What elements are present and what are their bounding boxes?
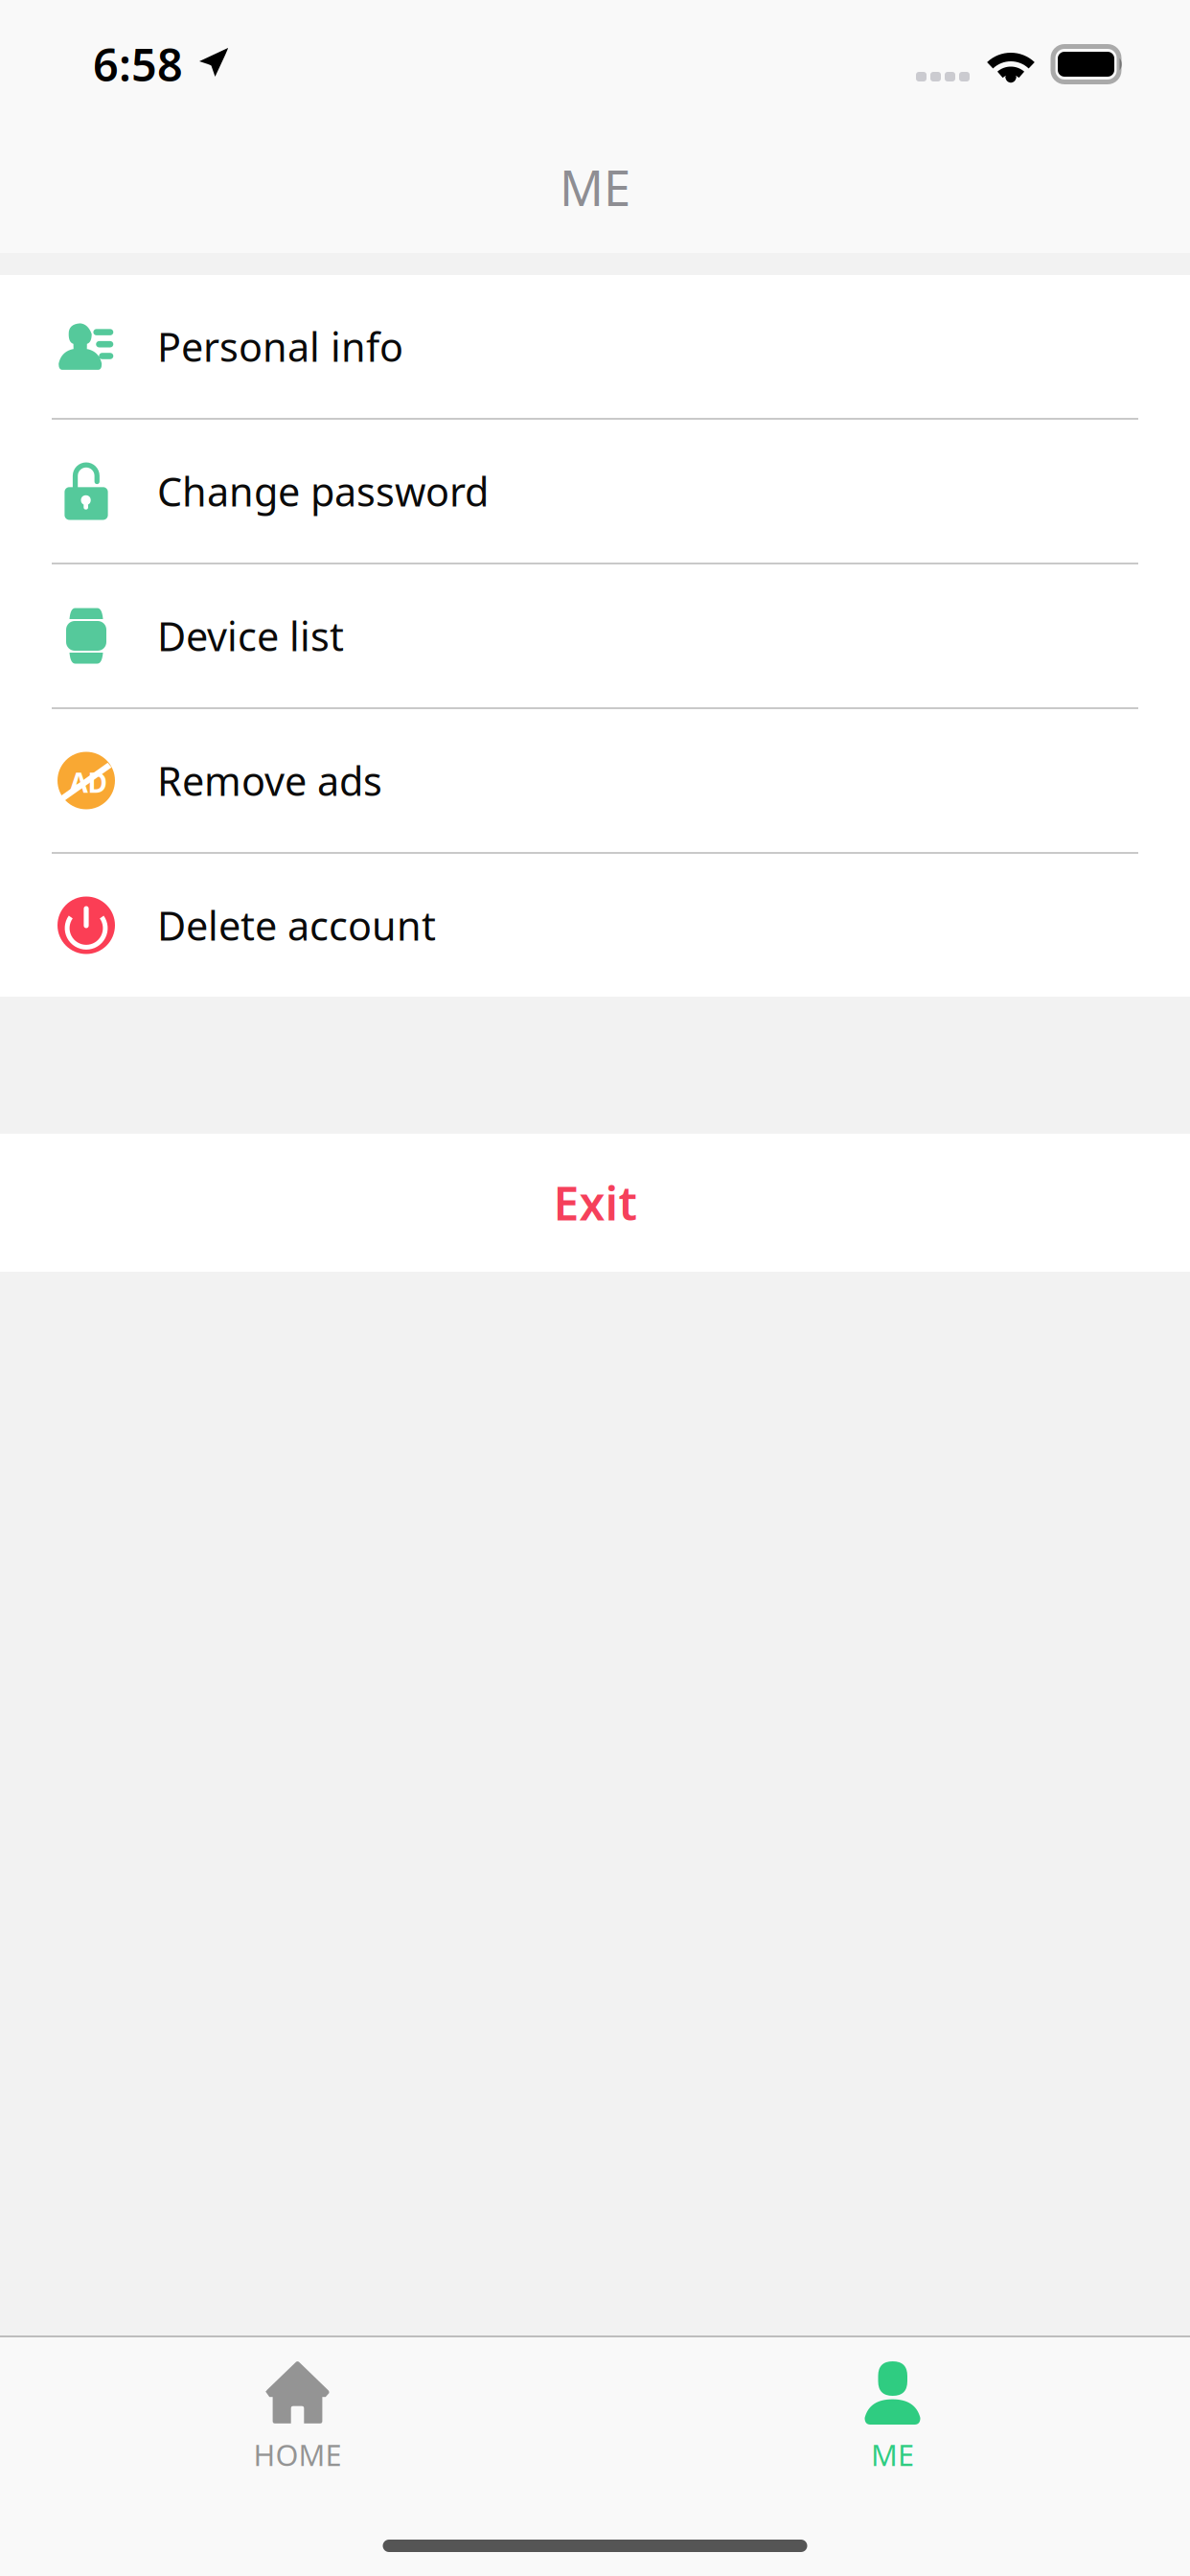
staticText: Change password (157, 465, 489, 517)
button[interactable]: HOME (0, 2337, 595, 2491)
button[interactable]: Delete account (0, 854, 1190, 997)
button[interactable]: AD (0, 709, 1190, 852)
staticText: Delete account (157, 899, 436, 952)
staticText: HOME (253, 2435, 342, 2474)
staticText: ME (560, 155, 630, 219)
staticText: Personal info (157, 320, 403, 373)
staticText: 6:58 (93, 34, 183, 94)
button[interactable]: Device list (0, 564, 1190, 707)
staticText: Device list (157, 610, 344, 662)
staticText: Exit (553, 1172, 637, 1233)
button[interactable]: Personal info (0, 275, 1190, 418)
staticText: AD (69, 765, 107, 800)
staticText: Remove ads (157, 754, 382, 807)
staticText: ME (871, 2435, 914, 2474)
button[interactable]: Exit (0, 1134, 1190, 1272)
button[interactable]: ME (595, 2337, 1190, 2491)
button[interactable]: Change password (0, 420, 1190, 563)
